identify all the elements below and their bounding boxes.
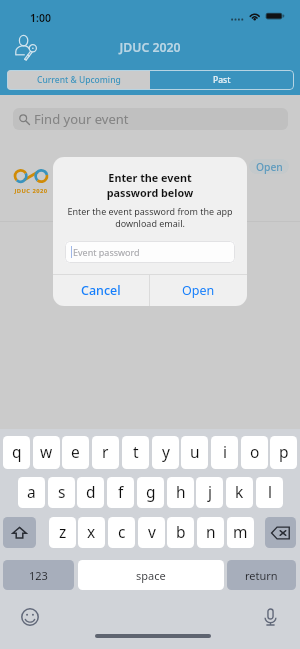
staticText: f: [118, 481, 124, 502]
staticText: y: [162, 441, 170, 462]
button[interactable]: w: [33, 436, 60, 469]
button[interactable]: Emoji keyboard: [21, 608, 39, 626]
button[interactable]: f: [107, 477, 134, 508]
button[interactable]: Past: [150, 70, 294, 90]
button[interactable]: 123: [3, 560, 74, 590]
button[interactable]: u: [181, 436, 208, 469]
button[interactable]: v: [138, 517, 165, 548]
staticText: k: [235, 481, 244, 502]
staticText: Enter the event password from the app do…: [61, 205, 239, 229]
staticText: l: [268, 481, 272, 502]
staticText: m: [233, 521, 248, 542]
staticText: Open: [182, 282, 215, 299]
staticText: w: [40, 441, 53, 462]
button[interactable]: space: [78, 560, 224, 590]
staticText: c: [118, 521, 126, 542]
button[interactable]: return: [227, 560, 296, 590]
staticText: d: [86, 481, 96, 502]
button[interactable]: h: [167, 477, 194, 508]
button[interactable]: Backspace: [265, 517, 296, 548]
button[interactable]: k: [226, 477, 253, 508]
staticText: n: [206, 521, 216, 542]
staticText: space: [136, 568, 166, 583]
staticText: r: [102, 441, 109, 462]
staticText: e: [71, 441, 80, 462]
staticText: s: [58, 481, 66, 502]
button[interactable]: c: [108, 517, 135, 548]
button[interactable]: b: [167, 517, 194, 548]
button[interactable]: z: [49, 517, 76, 548]
button[interactable]: Shift: [3, 517, 36, 548]
button[interactable]: o: [241, 436, 268, 469]
button[interactable]: l: [256, 477, 283, 508]
button[interactable]: Find your event: [13, 108, 288, 130]
staticText: 123: [29, 568, 48, 583]
button[interactable]: t: [122, 436, 149, 469]
staticText: Cancel: [81, 282, 121, 299]
button[interactable]: Event password: [65, 241, 235, 263]
staticText: a: [27, 481, 36, 502]
button[interactable]: n: [197, 517, 224, 548]
staticText: u: [190, 441, 200, 462]
staticText: g: [146, 481, 156, 502]
button[interactable]: Dictation: [263, 607, 278, 627]
staticText: x: [87, 521, 96, 542]
staticText: Current & Upcoming: [37, 74, 121, 86]
button[interactable]: r: [92, 436, 119, 469]
button[interactable]: Cancel: [53, 275, 149, 306]
staticText: t: [133, 441, 139, 462]
button[interactable]: p: [270, 436, 297, 469]
staticText: Enter the event password below: [53, 170, 247, 200]
button[interactable]: x: [78, 517, 105, 548]
staticText: v: [148, 521, 156, 542]
staticText: o: [250, 441, 260, 462]
staticText: Past: [213, 74, 231, 86]
button[interactable]: Open: [249, 159, 289, 174]
staticText: 1:00: [30, 11, 51, 25]
button[interactable]: Open: [150, 275, 247, 306]
button[interactable]: d: [77, 477, 104, 508]
staticText: q: [12, 441, 22, 462]
button[interactable]: Current & Upcoming: [7, 70, 150, 90]
staticText: Open: [256, 160, 283, 174]
button[interactable]: s: [48, 477, 75, 508]
staticText: h: [176, 481, 186, 502]
staticText: return: [245, 568, 278, 583]
button[interactable]: Account login: [13, 32, 40, 60]
button[interactable]: i: [211, 436, 238, 469]
staticText: JDUC 2020: [0, 39, 300, 56]
staticText: i: [223, 441, 227, 462]
button[interactable]: y: [152, 436, 179, 469]
button[interactable]: m: [227, 517, 254, 548]
button[interactable]: j: [196, 477, 223, 508]
button[interactable]: g: [137, 477, 164, 508]
staticText: Event password: [73, 246, 140, 258]
staticText: b: [176, 521, 186, 542]
button[interactable]: e: [62, 436, 89, 469]
staticText: Find your event: [34, 110, 129, 128]
button[interactable]: q: [3, 436, 30, 469]
staticText: JDUC 2020: [11, 187, 51, 195]
staticText: j: [208, 481, 212, 502]
staticText: z: [59, 521, 67, 542]
button[interactable]: a: [18, 477, 45, 508]
staticText: p: [279, 441, 289, 462]
